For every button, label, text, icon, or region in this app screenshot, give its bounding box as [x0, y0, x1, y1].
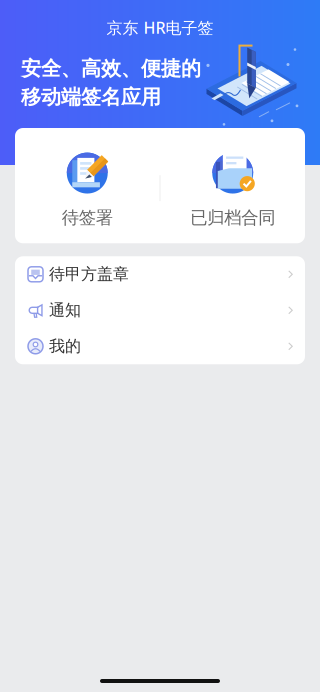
- button[interactable]: 待甲方盖章: [15, 256, 305, 292]
- button[interactable]: 待签署: [15, 148, 159, 228]
- button[interactable]: 我的: [15, 328, 305, 364]
- staticText: 移动端签名应用: [21, 85, 161, 109]
- button[interactable]: 已归档合同: [160, 148, 305, 228]
- staticText: 安全、高效、便捷的: [21, 56, 201, 81]
- staticText: 京东 HR电子签: [106, 17, 213, 38]
- staticText: 已归档合同: [190, 207, 275, 228]
- staticText: 待签署: [62, 207, 113, 228]
- staticText: 通知: [49, 300, 81, 320]
- staticText: 我的: [49, 336, 81, 356]
- button[interactable]: 通知: [15, 292, 305, 328]
- staticText: 待甲方盖章: [49, 264, 129, 284]
